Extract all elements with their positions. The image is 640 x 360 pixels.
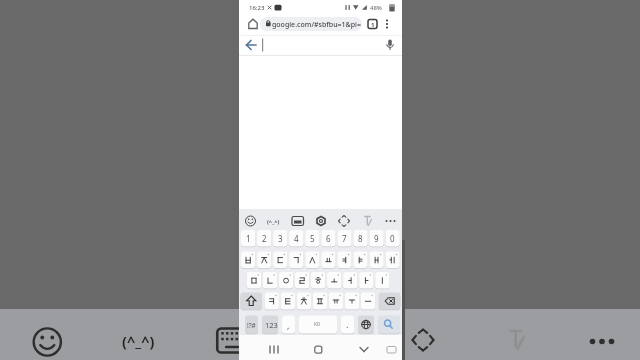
button[interactable] (279, 272, 293, 289)
button[interactable] (289, 214, 306, 228)
button[interactable] (260, 17, 362, 31)
button[interactable] (336, 214, 352, 228)
button[interactable] (262, 316, 278, 334)
staticText: 9 (374, 233, 379, 244)
button[interactable] (241, 293, 263, 310)
staticText: 1 (246, 233, 251, 244)
button[interactable] (121, 329, 159, 351)
button[interactable] (297, 293, 311, 310)
button[interactable] (382, 37, 398, 53)
button[interactable] (257, 252, 271, 269)
button[interactable] (282, 316, 295, 334)
button[interactable] (243, 214, 258, 228)
staticText: 5 (310, 233, 315, 244)
button[interactable] (281, 293, 295, 310)
button[interactable] (321, 252, 335, 269)
button[interactable] (385, 230, 399, 247)
staticText: 16:23 (249, 4, 265, 12)
button[interactable] (341, 316, 354, 334)
button[interactable]: (^_^) (122, 331, 155, 351)
button[interactable]: !?# (247, 321, 256, 330)
button[interactable] (273, 230, 287, 247)
button[interactable]: KR (314, 321, 321, 328)
button[interactable] (381, 16, 394, 32)
button[interactable] (355, 340, 373, 358)
button[interactable] (383, 342, 400, 356)
button[interactable] (32, 327, 63, 357)
button[interactable] (241, 230, 255, 247)
button[interactable] (382, 214, 399, 228)
button[interactable]: (^_^) (267, 218, 280, 225)
button[interactable] (305, 230, 319, 247)
button[interactable] (360, 214, 376, 228)
button[interactable] (327, 272, 341, 289)
button[interactable] (247, 272, 261, 289)
button[interactable] (353, 230, 367, 247)
button[interactable] (385, 252, 399, 269)
button[interactable] (289, 230, 303, 247)
button[interactable]: . (346, 318, 349, 330)
button[interactable] (265, 340, 283, 358)
button[interactable] (587, 330, 617, 352)
staticText: 2 (262, 233, 267, 244)
button[interactable] (257, 230, 271, 247)
button[interactable] (311, 272, 325, 289)
button[interactable]: , (287, 319, 290, 331)
button[interactable] (411, 328, 435, 352)
staticText: 0 (390, 233, 395, 244)
button[interactable] (379, 293, 401, 310)
button[interactable] (313, 293, 327, 310)
button[interactable] (337, 252, 351, 269)
button[interactable] (321, 230, 335, 247)
staticText: 3 (278, 233, 283, 244)
button[interactable] (361, 293, 375, 310)
button[interactable] (265, 293, 279, 310)
staticText: 7 (342, 233, 347, 244)
button[interactable] (216, 327, 240, 354)
button[interactable] (378, 316, 400, 334)
staticText: 48% (370, 4, 382, 12)
button[interactable] (369, 230, 383, 247)
button[interactable] (263, 272, 277, 289)
button[interactable] (299, 316, 337, 334)
staticText: 4 (294, 233, 299, 244)
button[interactable] (289, 252, 303, 269)
button[interactable] (337, 230, 351, 247)
button[interactable] (345, 293, 359, 310)
button[interactable]: 123 (265, 320, 278, 330)
staticText: 8 (358, 233, 363, 244)
button[interactable] (365, 16, 380, 32)
button[interactable] (343, 272, 357, 289)
button[interactable] (295, 272, 309, 289)
button[interactable]: 1 (371, 21, 375, 29)
button[interactable] (369, 252, 383, 269)
button[interactable]: google.com/#sbfbu=1&pi= (272, 20, 361, 30)
button[interactable] (313, 214, 329, 228)
button[interactable] (273, 252, 287, 269)
button[interactable] (329, 293, 343, 310)
button[interactable] (265, 214, 283, 228)
button[interactable] (375, 272, 389, 289)
button[interactable] (243, 37, 260, 53)
button[interactable] (241, 252, 255, 269)
button[interactable] (358, 316, 374, 334)
button[interactable] (353, 252, 367, 269)
staticText: 6 (326, 233, 331, 244)
button[interactable] (245, 316, 258, 334)
button[interactable] (245, 16, 261, 32)
button[interactable] (359, 272, 373, 289)
button[interactable] (503, 328, 531, 352)
button[interactable] (309, 340, 327, 358)
button[interactable] (305, 252, 319, 269)
